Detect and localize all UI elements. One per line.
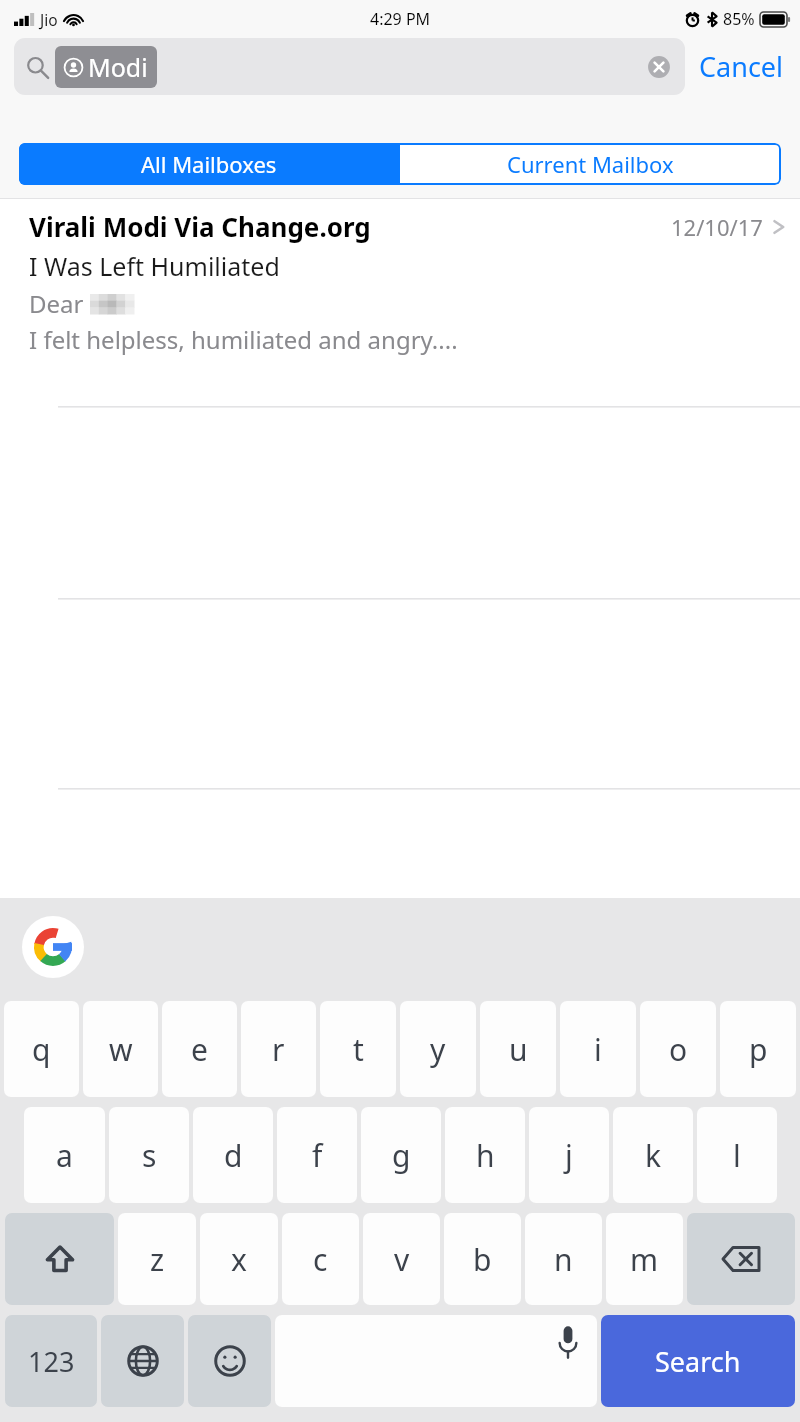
button[interactable]: t xyxy=(320,1001,396,1097)
button[interactable]: Modi xyxy=(14,38,685,95)
staticText: h xyxy=(476,1135,495,1176)
button[interactable]: n xyxy=(525,1213,602,1305)
staticText: z xyxy=(150,1239,165,1280)
button[interactable]: r xyxy=(241,1001,316,1097)
button[interactable]: Current Mailbox xyxy=(400,143,781,185)
staticText: t xyxy=(353,1029,364,1070)
staticText: d xyxy=(224,1135,243,1176)
staticText: Dear xyxy=(29,287,90,320)
button[interactable]: 123 xyxy=(5,1315,97,1407)
staticText: o xyxy=(669,1029,688,1070)
button[interactable]: z xyxy=(118,1213,196,1305)
staticText: n xyxy=(554,1239,573,1280)
staticText: l xyxy=(733,1135,741,1176)
button[interactable]: Virali Modi Via Change.org xyxy=(0,199,800,366)
button[interactable]: Cancel xyxy=(685,38,786,95)
staticText: w xyxy=(109,1029,133,1070)
staticText: k xyxy=(645,1135,662,1176)
button[interactable]: k xyxy=(613,1107,693,1203)
staticText: p xyxy=(749,1029,768,1070)
button[interactable]: Backspace xyxy=(687,1213,795,1305)
staticText: y xyxy=(430,1029,446,1070)
button[interactable]: a xyxy=(24,1107,105,1203)
staticText: I Was Left Humiliated xyxy=(29,249,280,283)
staticText: All Mailboxes xyxy=(141,149,277,179)
button[interactable]: m xyxy=(606,1213,683,1305)
staticText: Cancel xyxy=(699,48,784,85)
staticText: b xyxy=(473,1239,492,1280)
staticText: x xyxy=(231,1239,247,1280)
button[interactable]: x xyxy=(200,1213,278,1305)
staticText: 4:29 PM xyxy=(370,8,431,30)
button[interactable]: v xyxy=(363,1213,440,1305)
button[interactable]: b xyxy=(444,1213,521,1305)
staticText: 12/10/17 xyxy=(671,212,763,242)
staticText: Modi xyxy=(88,50,148,84)
button[interactable]: p xyxy=(720,1001,796,1097)
button[interactable]: y xyxy=(400,1001,476,1097)
button[interactable]: s xyxy=(109,1107,189,1203)
button[interactable]: g xyxy=(361,1107,441,1203)
staticText: Jio xyxy=(40,9,58,30)
staticText: f xyxy=(312,1135,323,1176)
staticText: c xyxy=(313,1239,328,1280)
staticText: I felt helpless, humiliated and angry...… xyxy=(29,323,458,356)
staticText: Current Mailbox xyxy=(507,149,674,179)
staticText: j xyxy=(565,1135,573,1176)
button[interactable]: w xyxy=(83,1001,158,1097)
button[interactable]: o xyxy=(640,1001,716,1097)
button[interactable]: c xyxy=(282,1213,359,1305)
staticText: Search xyxy=(655,1343,741,1380)
button[interactable]: f xyxy=(277,1107,357,1203)
button[interactable]: j xyxy=(529,1107,609,1203)
button[interactable]: e xyxy=(162,1001,237,1097)
staticText: q xyxy=(32,1029,51,1070)
staticText: 123 xyxy=(28,1343,75,1380)
staticText: Virali Modi Via Change.org xyxy=(29,209,371,244)
button[interactable]: l xyxy=(697,1107,777,1203)
staticText: g xyxy=(392,1135,411,1176)
button[interactable]: Clear search xyxy=(645,53,673,81)
staticText: r xyxy=(272,1029,285,1070)
button[interactable]: Google xyxy=(22,916,84,978)
button[interactable]: Change language xyxy=(101,1315,184,1407)
button[interactable]: i xyxy=(560,1001,636,1097)
button[interactable]: u xyxy=(480,1001,556,1097)
staticText: a xyxy=(56,1135,73,1176)
staticText: v xyxy=(394,1239,410,1280)
staticText: s xyxy=(142,1135,157,1176)
staticText: i xyxy=(594,1029,602,1070)
staticText: u xyxy=(509,1029,528,1070)
button[interactable]: All Mailboxes xyxy=(19,143,399,185)
staticText: m xyxy=(630,1239,659,1280)
button[interactable]: q xyxy=(4,1001,79,1097)
button[interactable]: Search xyxy=(601,1315,795,1407)
staticText: 85% xyxy=(723,8,755,30)
button[interactable]: d xyxy=(193,1107,273,1203)
button[interactable]: Space xyxy=(275,1315,597,1407)
button[interactable]: Shift xyxy=(5,1213,114,1305)
staticText: e xyxy=(191,1029,208,1070)
button[interactable]: h xyxy=(445,1107,525,1203)
button[interactable]: Emoji xyxy=(188,1315,271,1407)
